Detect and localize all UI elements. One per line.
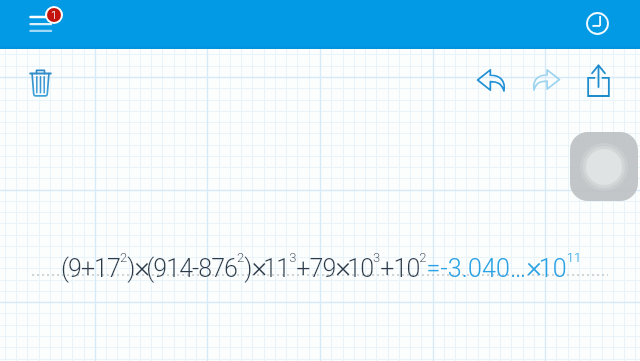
- staticText: (9+172)×(914-8762)×113+79×103+102=-3.040…: [61, 249, 582, 284]
- button[interactable]: Undo: [467, 60, 513, 102]
- button[interactable]: Delete: [20, 62, 62, 102]
- button[interactable]: Pan control: [570, 132, 638, 201]
- staticText: 1: [51, 9, 58, 22]
- button[interactable]: Share: [578, 56, 622, 102]
- button[interactable]: Redo: [522, 60, 568, 102]
- button[interactable]: History: [578, 4, 618, 44]
- button[interactable]: Menu: [24, 0, 68, 44]
